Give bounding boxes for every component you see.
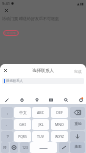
staticText: ？ (5, 134, 10, 139)
button[interactable]: Close (4, 8, 9, 13)
button[interactable]: ABC (32, 107, 49, 118)
staticText: ABC (37, 110, 44, 115)
staticText: GHI (19, 122, 26, 127)
staticText: WXYZ (55, 134, 64, 139)
staticText: 9:41 (2, 1, 10, 6)
button[interactable]: Close sheet (3, 68, 8, 73)
staticText: 活动门票 赠送给好友后不可退款 (2, 16, 60, 21)
staticText: TUV (37, 134, 44, 139)
staticText: ▲ ▮▮ (77, 2, 84, 6)
button[interactable]: 重输 (70, 119, 85, 130)
staticText: 选择联系人 (32, 68, 54, 74)
button[interactable]: 搜索 (70, 142, 85, 153)
button[interactable]: Backspace (70, 107, 85, 118)
staticText: ， (5, 110, 10, 115)
button[interactable]: TUV (32, 131, 49, 142)
button[interactable]: Space (30, 142, 57, 153)
button[interactable]: MNO (51, 119, 68, 130)
staticText: JKL (38, 122, 44, 127)
button[interactable]: 完成 (74, 69, 82, 74)
staticText: DEF (56, 110, 63, 115)
button[interactable]: 123 (20, 142, 29, 153)
button[interactable]: 中文 (14, 107, 31, 118)
button[interactable]: DEF (51, 107, 68, 118)
button[interactable]: ， (1, 107, 13, 118)
button[interactable]: tool4 (61, 95, 71, 104)
staticText: 立即领取 > (4, 31, 19, 35)
staticText: 搜索 (74, 145, 82, 150)
button[interactable]: JKL (32, 119, 49, 130)
button[interactable]: Settings (10, 142, 18, 153)
button[interactable]: tool3 (46, 95, 56, 104)
staticText: 搜索联系人 (6, 79, 23, 83)
button[interactable]: tool5 (76, 95, 86, 104)
button[interactable]: tool2 (32, 95, 42, 104)
button[interactable]: 符 (1, 142, 9, 153)
button[interactable]: Enter (70, 131, 85, 142)
staticText: MNO (55, 122, 64, 127)
button[interactable]: ？ (1, 131, 13, 142)
button[interactable]: tool0 (2, 95, 12, 104)
button[interactable]: PQRS (14, 131, 31, 142)
button[interactable]: 立即领取 > (3, 30, 19, 36)
button[interactable]: WXYZ (51, 131, 68, 142)
button[interactable]: GHI (14, 119, 31, 130)
staticText: 123 (22, 146, 28, 150)
staticText: PQRS (18, 134, 27, 139)
button[interactable]: Comma (59, 142, 69, 153)
staticText: 。 (5, 122, 10, 127)
button[interactable]: tool1 (17, 95, 27, 104)
staticText: 中文 (19, 110, 27, 115)
staticText: 符 (3, 145, 7, 150)
button[interactable]: 搜索联系人 (2, 78, 84, 84)
staticText: 重输 (74, 122, 82, 127)
